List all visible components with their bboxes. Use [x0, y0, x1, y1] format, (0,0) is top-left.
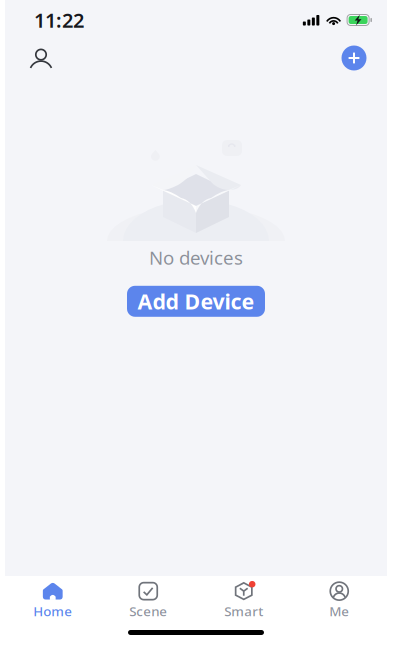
button[interactable]: Add device [332, 38, 376, 78]
button[interactable]: Me [291, 576, 387, 626]
staticText: Home [33, 602, 72, 620]
button[interactable]: Profile [19, 38, 63, 78]
button[interactable]: Scene [100, 576, 196, 626]
staticText: 11:22 [34, 7, 84, 33]
staticText: Me [329, 602, 349, 620]
staticText: No devices [149, 245, 243, 270]
button[interactable]: Smart [196, 576, 291, 626]
button[interactable]: Home [5, 576, 100, 626]
staticText: Scene [129, 602, 167, 620]
staticText: Smart [224, 602, 263, 620]
staticText: Add Device [137, 287, 254, 315]
button[interactable]: Add Device [127, 286, 265, 317]
